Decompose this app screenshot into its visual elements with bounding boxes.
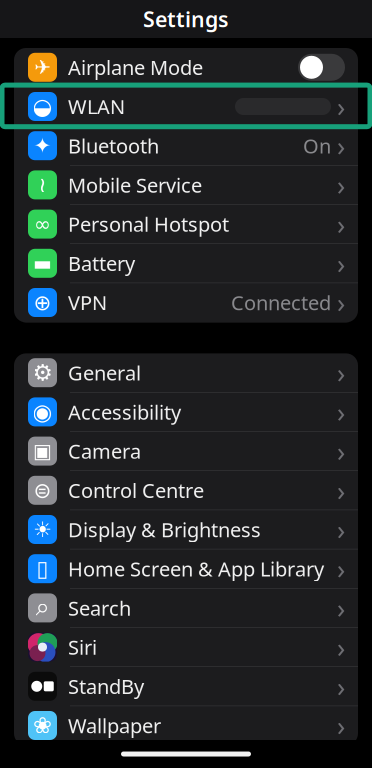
staticText: Personal Hotspot — [68, 211, 229, 237]
staticText: ▬ — [33, 252, 52, 275]
button[interactable]: StandBy — [14, 667, 358, 706]
button[interactable]: ⊜ — [14, 471, 358, 510]
staticText: ☀ — [33, 517, 52, 542]
button[interactable]: Siri — [14, 628, 358, 667]
staticText: Control Centre — [68, 477, 204, 504]
staticText: Accessibility — [68, 399, 181, 425]
staticText: ⊕ — [33, 290, 51, 315]
staticText: Airplane Mode — [68, 54, 203, 81]
staticText: ◒ — [32, 94, 52, 119]
button[interactable]: ▬ — [14, 244, 358, 283]
staticText: › — [337, 355, 345, 390]
button[interactable]: ◉ — [14, 393, 358, 432]
staticText: › — [337, 128, 345, 163]
button[interactable]: ☀ — [14, 510, 358, 549]
staticText: StandBy — [68, 673, 144, 700]
staticText: ≀ — [38, 173, 46, 197]
staticText: › — [337, 285, 345, 320]
button[interactable]: ✈ — [14, 48, 358, 87]
button[interactable]: ≀ — [14, 166, 358, 205]
staticText: WLAN — [68, 93, 125, 120]
staticText: › — [337, 708, 345, 743]
staticText: ⊜ — [33, 478, 51, 502]
staticText: Battery — [68, 250, 135, 277]
staticText: ⚙ — [32, 360, 52, 385]
staticText: Connected — [231, 289, 331, 316]
staticText: Mobile Service — [68, 172, 202, 198]
staticText: › — [337, 629, 345, 665]
staticText: General — [68, 359, 141, 386]
staticText: › — [337, 246, 345, 281]
button[interactable]: ▯ — [14, 549, 358, 589]
staticText: Display & Brightness — [68, 516, 261, 543]
staticText: › — [337, 89, 345, 124]
staticText: › — [337, 394, 345, 430]
staticText: Camera — [68, 438, 141, 464]
staticText: › — [337, 590, 345, 626]
staticText: › — [337, 433, 345, 469]
staticText: › — [337, 512, 345, 547]
staticText: ⌕ — [35, 595, 49, 620]
staticText: Wallpaper — [68, 712, 161, 739]
button[interactable]: ◒ — [14, 87, 358, 126]
button[interactable]: ⌕ — [14, 589, 358, 628]
button[interactable]: ∞ — [14, 205, 358, 244]
staticText: VPN — [68, 289, 107, 316]
button[interactable]: ✦ — [14, 126, 358, 166]
staticText: Search — [68, 595, 131, 621]
staticText: › — [337, 206, 345, 242]
staticText: › — [337, 551, 345, 586]
staticText: ▣ — [33, 440, 52, 462]
staticText: Settings — [143, 5, 229, 33]
staticText: ∞ — [34, 213, 51, 235]
staticText: ✈ — [34, 56, 51, 79]
staticText: Bluetooth — [68, 132, 159, 159]
staticText: › — [337, 167, 345, 203]
staticText: › — [337, 473, 345, 508]
button[interactable]: ⊕ — [14, 283, 358, 322]
button[interactable]: ▣ — [14, 432, 358, 471]
staticText: ▯ — [36, 557, 48, 581]
staticText: Home Screen & App Library — [68, 555, 324, 582]
staticText: On — [303, 132, 331, 159]
staticText: Siri — [68, 634, 97, 660]
staticText: › — [337, 669, 345, 704]
button[interactable]: ❀ — [14, 706, 358, 745]
button[interactable]: ⚙ — [14, 353, 358, 393]
staticText: ❀ — [33, 713, 52, 738]
staticText: ◉ — [32, 399, 52, 425]
staticText: ✦ — [33, 134, 51, 158]
